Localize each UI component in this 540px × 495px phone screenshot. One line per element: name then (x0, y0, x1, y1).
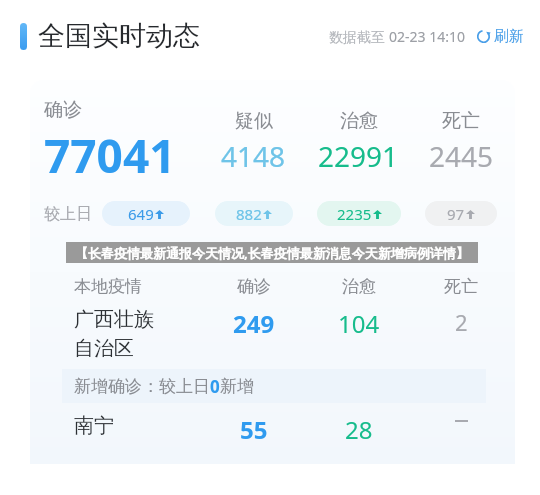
staticText: 死亡 (444, 276, 478, 297)
staticText: 刷新 (494, 27, 524, 46)
button[interactable]: 649 (102, 201, 190, 226)
staticText: 广西壮族 (74, 307, 154, 332)
staticText: 【长春疫情最新通报今天情况,长春疫情最新消息今天新增病例详情】 (75, 244, 469, 262)
staticText: 较上日 (44, 204, 92, 224)
staticText: 0 (210, 375, 220, 398)
staticText: 南宁 (74, 413, 114, 438)
staticText: 249 (233, 307, 275, 340)
button[interactable]: 南宁 (30, 413, 515, 446)
staticText: 自治区 (74, 336, 134, 361)
staticText: 55 (240, 413, 268, 446)
staticText: 649 (128, 204, 154, 224)
button[interactable]: 97 (425, 201, 497, 226)
staticText: 全国实时动态 (38, 19, 200, 53)
staticText: 死亡 (442, 109, 480, 133)
staticText: 本地疫情 (74, 276, 142, 297)
staticText: 2 (455, 307, 468, 337)
staticText: 4148 (221, 137, 286, 175)
button[interactable]: 广西壮族 (30, 307, 515, 361)
staticText: 数据截至 (329, 27, 389, 46)
staticText: 新增确诊：较上日 (74, 376, 210, 397)
staticText: 确诊 (44, 98, 82, 122)
staticText: 77041 (44, 124, 176, 187)
staticText: 02-23 14:10 (389, 27, 465, 46)
staticText: 确诊 (237, 276, 271, 297)
staticText: 新增 (220, 376, 254, 397)
staticText: 22991 (318, 137, 399, 175)
staticText: 2445 (429, 137, 494, 175)
staticText: 治愈 (340, 109, 378, 133)
button[interactable]: 2235 (317, 201, 401, 226)
button[interactable]: Refresh (474, 25, 526, 48)
staticText: 疑似 (235, 109, 273, 133)
staticText: 治愈 (342, 276, 376, 297)
button[interactable]: 882 (215, 201, 293, 226)
staticText: 2235 (337, 204, 372, 224)
other: Refresh (476, 29, 491, 44)
staticText: 882 (236, 204, 262, 224)
staticText: 104 (338, 307, 380, 340)
staticText: 28 (345, 413, 373, 446)
staticText: 97 (447, 204, 465, 224)
